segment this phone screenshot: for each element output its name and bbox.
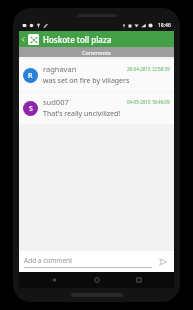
button[interactable]: Comments (19, 47, 174, 57)
button[interactable]: Send (157, 256, 169, 268)
staticText: 18:46 (158, 22, 171, 29)
staticText: Hoskote toll plaza (43, 34, 112, 45)
staticText: That's really uncivilized! (43, 109, 121, 119)
button[interactable]: R (19, 59, 174, 91)
staticText: Comments (82, 49, 111, 56)
button[interactable]: Back (46, 272, 62, 288)
button[interactable]: Home (89, 272, 105, 288)
staticText: 28-04-2015 12:58:39 (127, 66, 170, 72)
button[interactable]: Recent apps (131, 272, 147, 288)
staticText: Add a comment (24, 256, 73, 265)
staticText: R (28, 71, 33, 81)
button[interactable]: Add a comment (24, 256, 152, 268)
button[interactable]: Back (19, 31, 28, 47)
staticText: raghavan (43, 64, 127, 74)
button[interactable]: S (19, 92, 174, 124)
staticText: sud007 (43, 97, 127, 107)
staticText: 04-05-2015 18:46:09 (127, 99, 170, 105)
staticText: was set on fire by villagers (43, 76, 130, 86)
staticText: S (29, 104, 33, 114)
